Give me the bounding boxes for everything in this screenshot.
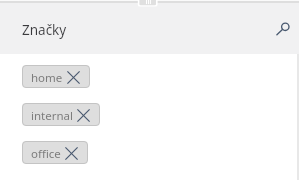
staticText: internal (31, 108, 73, 124)
button[interactable]: Remove home (67, 71, 80, 84)
button[interactable]: office (22, 141, 88, 164)
staticText: office (31, 146, 61, 162)
button[interactable]: internal (22, 103, 100, 126)
button[interactable]: Remove internal (77, 109, 90, 122)
staticText: Značky (22, 21, 67, 39)
button[interactable]: Search (270, 12, 299, 41)
button[interactable]: Remove office (65, 147, 78, 160)
button[interactable]: home (22, 65, 90, 88)
staticText: home (31, 70, 63, 86)
